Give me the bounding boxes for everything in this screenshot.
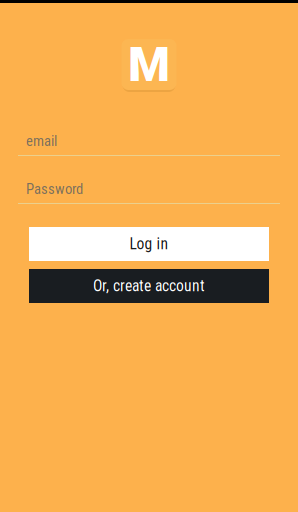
button[interactable]: Or, create account — [29, 269, 269, 303]
staticText: email — [26, 132, 57, 150]
staticText: Password — [26, 180, 83, 198]
button[interactable]: Log in — [29, 227, 269, 261]
staticText: Or, create account — [93, 277, 205, 295]
staticText: Log in — [129, 235, 168, 253]
staticText: M — [128, 36, 170, 93]
